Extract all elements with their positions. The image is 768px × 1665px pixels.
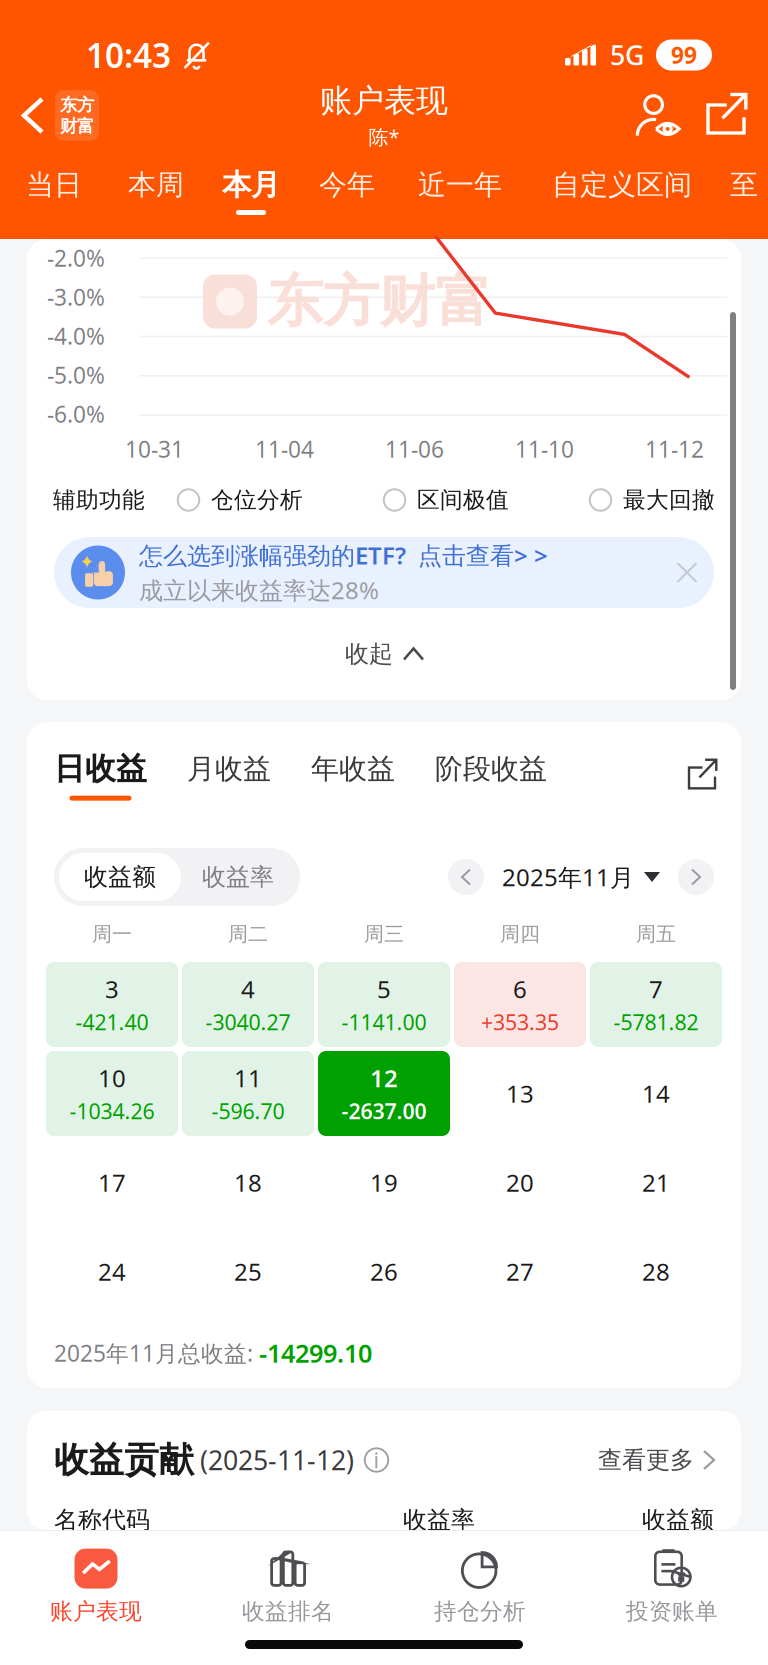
button[interactable]: 今年 — [298, 155, 396, 227]
staticText: 今年 — [319, 168, 375, 202]
staticText: +353.35 — [481, 1008, 559, 1036]
staticText: 怎么选到涨幅强劲的ETF? 点击查看> > — [139, 539, 548, 571]
button[interactable]: 本月 — [204, 155, 298, 227]
button[interactable]: 6 — [454, 962, 586, 1047]
button[interactable]: 13 — [454, 1051, 586, 1136]
button[interactable]: 关闭 — [664, 549, 710, 595]
staticText: 14 — [642, 1078, 670, 1109]
button[interactable]: 当日 — [0, 155, 108, 227]
button[interactable]: 仓位分析 — [177, 486, 303, 514]
button[interactable]: 年收益 — [311, 752, 395, 799]
staticText: -3040.27 — [205, 1008, 290, 1036]
button[interactable]: 访客模式 — [624, 76, 692, 155]
button[interactable]: 3 — [46, 962, 178, 1047]
staticText: 近一年 — [418, 168, 502, 202]
button[interactable]: 10 — [46, 1051, 178, 1136]
staticText: 11-04 — [255, 434, 314, 464]
staticText: 99 — [671, 40, 697, 70]
staticText: -6.0% — [47, 399, 105, 429]
staticText: 持仓分析 — [434, 1598, 526, 1625]
staticText: 24 — [98, 1256, 126, 1287]
button[interactable]: 28 — [590, 1229, 722, 1314]
button[interactable]: 27 — [454, 1229, 586, 1314]
staticText: 财富 — [60, 115, 94, 137]
button[interactable]: 14 — [590, 1051, 722, 1136]
staticText: 自定义区间 — [552, 168, 692, 202]
staticText: 查看更多 — [598, 1445, 694, 1475]
staticText: 日收益 — [54, 750, 147, 788]
staticText: 27 — [506, 1256, 534, 1287]
staticText: -5781.82 — [613, 1008, 698, 1036]
staticText: 3 — [105, 973, 119, 1005]
staticText: 周四 — [500, 922, 540, 946]
staticText: 名称代码 — [54, 1505, 150, 1535]
button[interactable]: 收起 — [345, 608, 423, 700]
staticText: -3.0% — [47, 282, 105, 312]
staticText: -1034.26 — [69, 1097, 154, 1125]
button[interactable]: 本周 — [108, 155, 204, 227]
staticText: 辅助功能 — [53, 486, 145, 514]
button[interactable]: 分享 — [677, 750, 727, 800]
staticText: 17 — [98, 1167, 126, 1198]
button[interactable]: 下个月 — [678, 859, 714, 895]
button[interactable]: 分享 — [692, 76, 760, 155]
button[interactable]: 18 — [182, 1140, 314, 1225]
button[interactable]: 19 — [318, 1140, 450, 1225]
staticText: 周一 — [92, 922, 132, 946]
button[interactable]: 区间极值 — [383, 486, 509, 514]
staticText: 本月 — [222, 167, 280, 203]
staticText: 2025年11月 — [502, 861, 634, 893]
staticText: -2637.00 — [341, 1097, 426, 1125]
staticText: -421.40 — [75, 1008, 148, 1036]
button[interactable]: 收益排名 — [192, 1537, 384, 1635]
button[interactable]: 持仓分析 — [384, 1537, 576, 1635]
staticText: 18 — [234, 1167, 262, 1198]
button[interactable]: 返回 — [0, 76, 99, 155]
staticText: 周五 — [636, 922, 676, 946]
staticText: 收益率 — [403, 1505, 475, 1535]
button[interactable]: 阶段收益 — [435, 752, 547, 799]
staticText: 7 — [649, 973, 663, 1005]
staticText: 5G — [610, 37, 644, 73]
button[interactable]: 4 — [182, 962, 314, 1047]
button[interactable]: 账户表现 — [0, 1537, 192, 1635]
staticText: 21 — [642, 1167, 670, 1198]
button[interactable]: 近一年 — [396, 155, 524, 227]
staticText: 20 — [506, 1167, 534, 1198]
staticText: 13 — [506, 1078, 534, 1109]
staticText: 账户表现 — [50, 1598, 142, 1625]
staticText: 收益贡献 — [54, 1439, 194, 1481]
button[interactable]: 11 — [182, 1051, 314, 1136]
button[interactable]: 26 — [318, 1229, 450, 1314]
staticText: (2025-11-12) — [200, 1442, 354, 1478]
staticText: 仓位分析 — [211, 486, 303, 514]
staticText: -14299.10 — [259, 1336, 372, 1370]
button[interactable]: 自定义区间 — [524, 155, 720, 227]
button[interactable]: 25 — [182, 1229, 314, 1314]
staticText: 年收益 — [311, 752, 395, 786]
staticText: 2025年11月总收益: — [54, 1338, 259, 1368]
staticText: 10-31 — [125, 434, 184, 464]
button[interactable]: 17 — [46, 1140, 178, 1225]
staticText: 收益额 — [84, 862, 156, 892]
button[interactable]: 5 — [318, 962, 450, 1047]
staticText: 东方财富 — [267, 267, 491, 336]
button[interactable]: 21 — [590, 1140, 722, 1225]
staticText: 区间极值 — [417, 486, 509, 514]
button[interactable]: 24 — [46, 1229, 178, 1314]
button[interactable]: 20 — [454, 1140, 586, 1225]
button[interactable]: 最大回撤 — [589, 486, 715, 514]
staticText: 至 — [730, 168, 758, 202]
button[interactable]: 12 — [318, 1051, 450, 1136]
button[interactable]: 投资账单 — [576, 1537, 768, 1635]
staticText: 最大回撤 — [623, 486, 715, 514]
button[interactable]: 月收益 — [187, 752, 271, 799]
button[interactable]: 查看更多 — [598, 1445, 714, 1475]
button[interactable]: 上个月 — [448, 859, 484, 895]
staticText: 月收益 — [187, 752, 271, 786]
button[interactable]: 7 — [590, 962, 722, 1047]
staticText: 成立以来收益率达28% — [139, 574, 379, 606]
button[interactable]: 日收益 — [54, 750, 147, 801]
button[interactable]: 至 — [720, 155, 768, 227]
staticText: 25 — [234, 1256, 262, 1287]
